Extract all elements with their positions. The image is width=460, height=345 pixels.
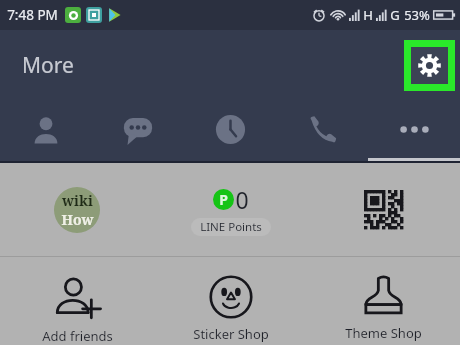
staticText: wiki [62, 191, 93, 210]
staticText: LINE Points [200, 219, 262, 235]
staticText: G [390, 6, 400, 24]
button[interactable]: My QR code [307, 163, 460, 256]
staticText: 7:48 PM [7, 6, 58, 24]
staticText: 53% [404, 6, 430, 24]
staticText: More [22, 51, 74, 80]
button[interactable]: P [154, 163, 307, 256]
staticText: Sticker Shop [193, 325, 269, 343]
button[interactable]: Sticker Shop [154, 257, 307, 345]
button[interactable]: More [18, 47, 78, 84]
staticText: Theme Shop [345, 324, 422, 342]
button[interactable]: Theme Shop [307, 257, 460, 345]
staticText: H [363, 6, 373, 24]
button[interactable]: More [368, 100, 460, 163]
button[interactable]: Add friends [0, 257, 154, 345]
staticText: 0 [235, 184, 249, 215]
staticText: P [219, 190, 228, 209]
button[interactable]: Settings [404, 40, 455, 91]
button[interactable]: Timeline [184, 100, 276, 163]
button[interactable]: Chats [92, 100, 184, 163]
button[interactable]: Friends [0, 100, 92, 163]
staticText: Add friends [42, 327, 113, 345]
staticText: How [61, 210, 94, 229]
button[interactable]: Calls [276, 100, 368, 163]
